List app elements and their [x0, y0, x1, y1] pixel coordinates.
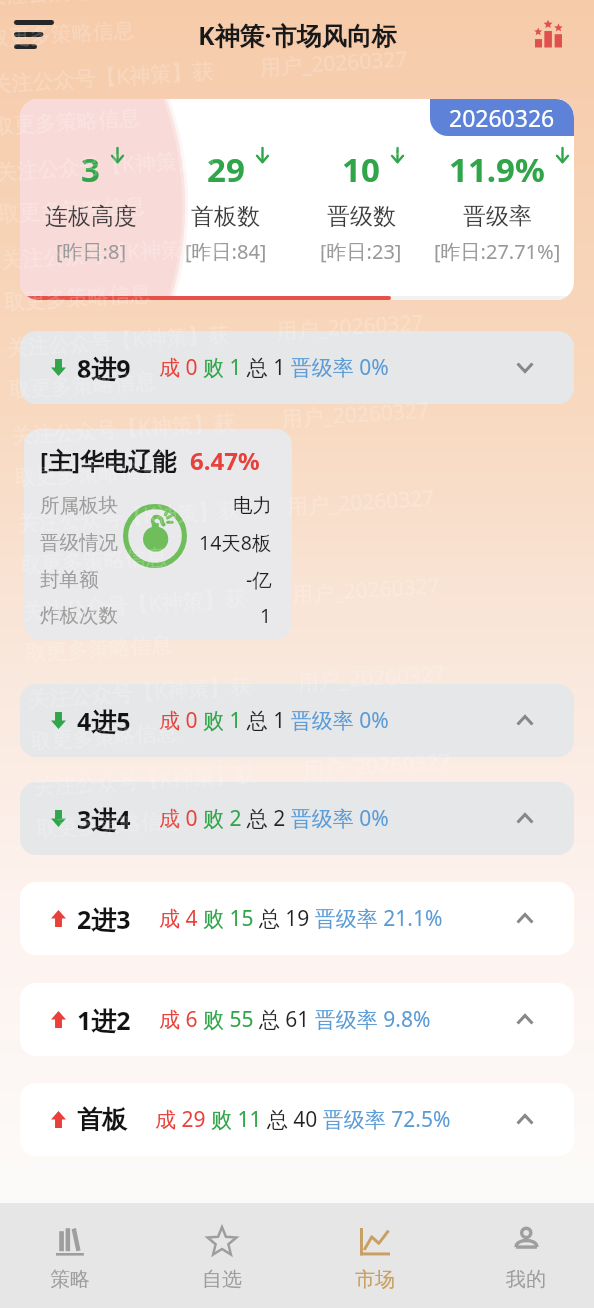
staticText: K神策·市场风向标: [198, 18, 397, 52]
button[interactable]: 市场: [315, 1203, 435, 1308]
button[interactable]: 4进5: [20, 684, 574, 757]
staticText: 关注公众号【K神策】获: [0, 56, 214, 99]
staticText: 1: [260, 602, 272, 629]
staticText: 关注公众号【K神策】获: [0, 232, 225, 274]
staticText: 用户_20260327: [270, 220, 419, 258]
button[interactable]: 自选: [162, 1203, 282, 1308]
staticText: 关注公众号【K神策】获: [33, 759, 257, 801]
staticText: 市场: [355, 1267, 395, 1292]
staticText: 用户_20260327: [281, 395, 430, 433]
staticText: 20260326: [449, 102, 555, 133]
staticText: 1进2: [77, 1003, 131, 1037]
staticText: [昨日:27.71%]: [434, 238, 561, 265]
staticText: 取更多策略信息: [9, 368, 157, 403]
button[interactable]: 2进3: [20, 882, 574, 955]
staticText: 3进4: [77, 802, 131, 836]
staticText: 取更多策略信息: [35, 807, 184, 842]
staticText: 取更多策略信息: [19, 544, 168, 579]
button[interactable]: 我的: [466, 1203, 586, 1308]
button[interactable]: 3: [20, 99, 574, 300]
staticText: 晋级数: [327, 202, 396, 231]
staticText: 关注公众号【K神策】获: [27, 671, 252, 713]
button[interactable]: 策略: [10, 1203, 130, 1308]
button[interactable]: 首板: [20, 1083, 574, 1156]
staticText: 2进3: [77, 902, 131, 936]
staticText: 取更多策略信息: [25, 632, 173, 666]
staticText: 关注公众号【K神策】获: [6, 320, 230, 362]
button[interactable]: 8进9: [20, 331, 574, 404]
staticText: 用户_20260327: [302, 747, 452, 785]
staticText: 成 29 败 11 总 40 晋级率 72.5%: [155, 1105, 451, 1134]
staticText: 自选: [202, 1267, 242, 1292]
staticText: 29: [207, 147, 245, 192]
staticText: 首板: [77, 1104, 127, 1135]
staticText: 关注公众号【K神策】获: [17, 495, 241, 538]
staticText: 10: [342, 147, 380, 192]
staticText: [主]华电辽能: [40, 444, 176, 477]
staticText: 用户_20260327: [259, 44, 409, 82]
staticText: 成 6 败 55 总 61 晋级率 9.8%: [159, 1005, 431, 1034]
staticText: 取更多策略信息: [14, 456, 162, 491]
staticText: 4进5: [77, 704, 131, 738]
staticText: 取更多策略信息: [3, 280, 151, 315]
staticText: 8进9: [77, 351, 131, 385]
staticText: 11.9%: [449, 147, 545, 192]
staticText: 策略: [50, 1267, 90, 1292]
staticText: 电力: [233, 493, 272, 518]
button[interactable]: Menu: [2, 8, 64, 60]
staticText: -亿: [246, 566, 272, 593]
staticText: 晋级情况: [40, 530, 118, 555]
staticText: 取更多策略信息: [0, 17, 135, 52]
button[interactable]: [主]华电辽能: [24, 429, 292, 640]
staticText: 14天8板: [199, 529, 272, 556]
staticText: 取更多策略信息: [0, 192, 146, 227]
button[interactable]: 3进4: [20, 782, 574, 855]
staticText: 取更多策略信息: [30, 719, 178, 754]
button[interactable]: Rankings: [525, 10, 573, 58]
staticText: 6.47%: [190, 444, 260, 477]
staticText: 用户_20260327: [275, 308, 425, 346]
staticText: 取更多策略信息: [0, 105, 141, 139]
staticText: 晋级率: [463, 202, 532, 231]
staticText: 所属板块: [40, 493, 118, 518]
staticText: 成 0 败 2 总 2 晋级率 0%: [159, 804, 389, 833]
staticText: [昨日:84]: [185, 238, 267, 265]
staticText: 关注公众号【K神策】获: [22, 583, 246, 626]
staticText: 成 0 败 1 总 1 晋级率 0%: [159, 353, 389, 382]
button[interactable]: 1进2: [20, 983, 574, 1056]
staticText: 3: [81, 147, 100, 192]
staticText: 成 0 败 1 总 1 晋级率 0%: [159, 706, 389, 735]
staticText: 用户_20260327: [265, 132, 414, 170]
staticText: 用户_20260327: [297, 659, 446, 697]
staticText: [昨日:8]: [56, 238, 126, 265]
staticText: 关注公众号【K神策】获: [0, 144, 219, 186]
staticText: 用户_20260327: [286, 483, 436, 521]
staticText: 首板数: [191, 202, 260, 231]
staticText: 封单额: [40, 567, 99, 592]
staticText: [昨日:23]: [320, 238, 402, 265]
staticText: 我的: [506, 1267, 546, 1292]
staticText: 关注公众号【K神策】获: [11, 407, 236, 450]
staticText: 连板高度: [45, 202, 137, 231]
staticText: 成 4 败 15 总 19 晋级率 21.1%: [159, 904, 443, 933]
staticText: 炸板次数: [40, 603, 118, 628]
